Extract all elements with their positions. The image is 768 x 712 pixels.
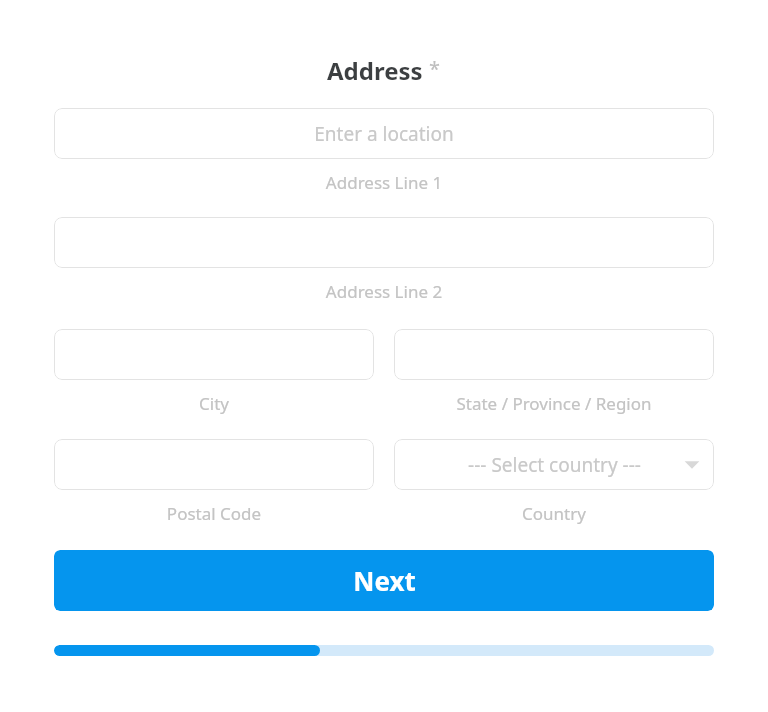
staticText: Address Line 1: [54, 171, 714, 194]
other: Progress: step 2 of 5: [54, 645, 714, 656]
staticText: --- Select country ---: [468, 452, 641, 478]
staticText: Postal Code: [54, 502, 374, 525]
staticText: *: [429, 55, 441, 82]
button[interactable]: --- Select country ---: [394, 439, 714, 490]
staticText: City: [54, 392, 374, 415]
button[interactable]: Next: [54, 550, 714, 611]
button[interactable]: [54, 217, 714, 268]
button[interactable]: [54, 439, 374, 490]
button[interactable]: [54, 329, 374, 380]
staticText: Enter a location: [314, 121, 454, 147]
staticText: Address: [327, 54, 423, 87]
staticText: Next: [353, 563, 416, 598]
staticText: Country: [394, 502, 714, 525]
staticText: State / Province / Region: [394, 392, 714, 415]
button[interactable]: Enter a location: [54, 108, 714, 159]
other: Open country list: [684, 459, 700, 471]
staticText: Address Line 2: [54, 280, 714, 303]
button[interactable]: [394, 329, 714, 380]
